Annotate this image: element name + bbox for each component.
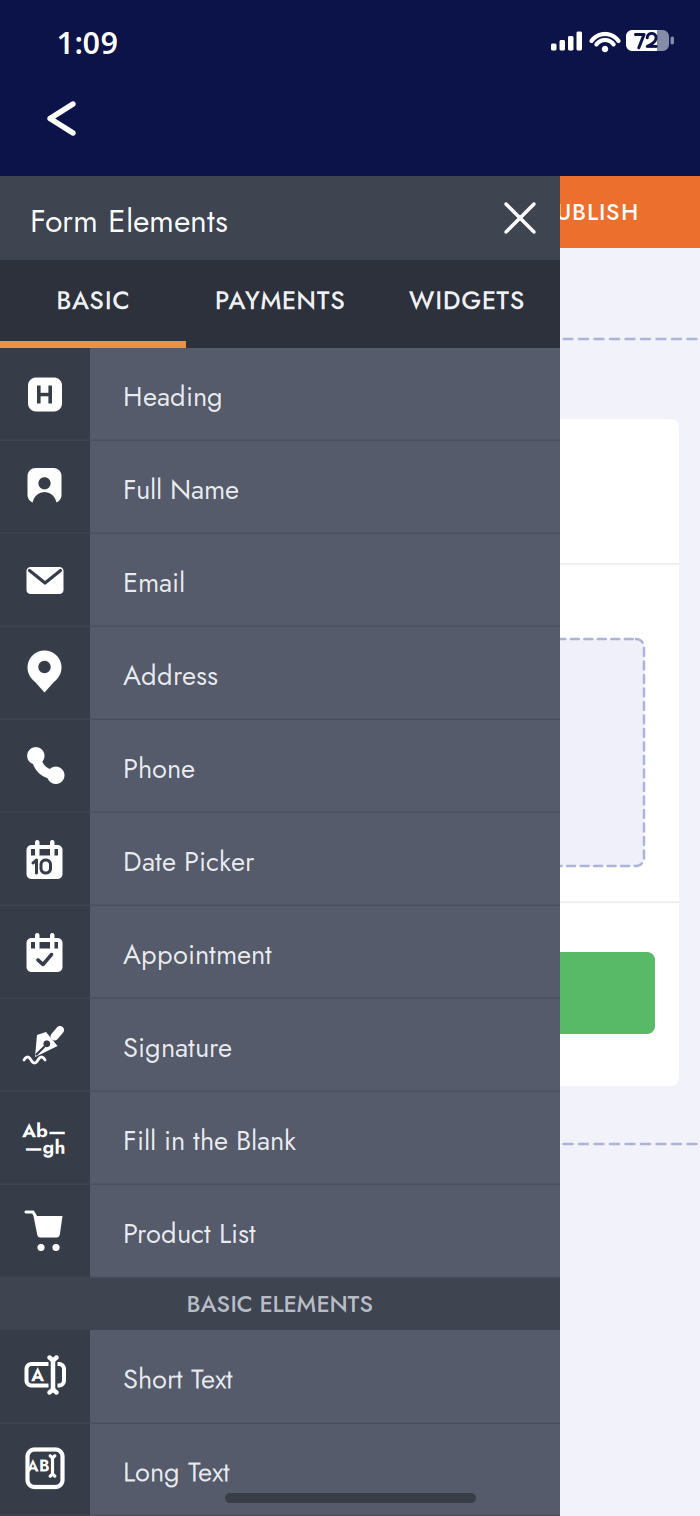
staticText: Heading: [123, 377, 223, 416]
staticText: BASIC ELEMENTS: [186, 1287, 373, 1321]
staticText: WIDGETS: [409, 282, 525, 319]
button[interactable]: Signature: [0, 999, 560, 1092]
button[interactable]: Ab—: [0, 1092, 560, 1185]
button[interactable]: UBLISH: [540, 176, 700, 248]
staticText: UBLISH: [556, 195, 638, 229]
button[interactable]: BASIC: [0, 260, 187, 341]
button[interactable]: Date Picker: [0, 813, 560, 906]
staticText: Address: [123, 656, 218, 695]
staticText: Phone: [123, 749, 195, 788]
staticText: Full Name: [123, 470, 239, 509]
button[interactable]: Close: [498, 196, 542, 240]
button[interactable]: Next: [548, 952, 655, 1034]
staticText: Signature: [123, 1028, 232, 1067]
button[interactable]: Product List: [0, 1185, 560, 1278]
staticText: AB: [27, 1454, 50, 1477]
staticText: 1:09: [56, 22, 118, 62]
staticText: BASIC: [56, 282, 130, 319]
button[interactable]: Heading: [0, 348, 560, 441]
staticText: Appointment: [123, 935, 272, 974]
button[interactable]: AB: [0, 1424, 560, 1516]
button[interactable]: Appointment: [0, 906, 560, 999]
staticText: Fill in the Blank: [123, 1121, 296, 1160]
button[interactable]: A: [0, 1330, 560, 1424]
button[interactable]: PAYMENTS: [187, 260, 373, 341]
staticText: Ab—: [22, 1116, 66, 1144]
staticText: —gh: [24, 1133, 65, 1161]
staticText: Form Elements: [30, 198, 228, 244]
button[interactable]: Email: [0, 534, 560, 627]
button[interactable]: Phone: [0, 720, 560, 813]
button[interactable]: Full Name: [0, 441, 560, 534]
button[interactable]: WIDGETS: [373, 260, 560, 341]
staticText: A: [31, 1362, 44, 1388]
staticText: Date Picker: [123, 842, 254, 881]
button[interactable]: Back: [39, 96, 83, 140]
staticText: Email: [123, 563, 185, 602]
staticText: Short Text: [123, 1359, 233, 1399]
staticText: Long Text: [123, 1452, 230, 1492]
staticText: Product List: [123, 1214, 256, 1253]
button[interactable]: Address: [0, 627, 560, 720]
staticText: PAYMENTS: [215, 282, 345, 319]
